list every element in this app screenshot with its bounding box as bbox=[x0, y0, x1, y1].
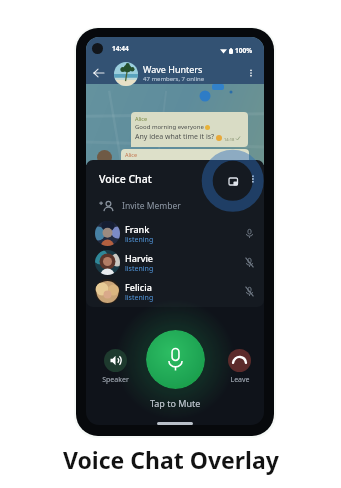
staticText: Invite Member bbox=[122, 200, 181, 212]
button[interactable]: Tap to Mute bbox=[146, 330, 205, 389]
staticText: Harvie bbox=[125, 252, 154, 264]
staticText: Alice bbox=[135, 115, 148, 122]
staticText: Felicia bbox=[125, 281, 152, 293]
button[interactable]: Unmute Harvie bbox=[244, 257, 255, 268]
button[interactable]: Leave bbox=[228, 349, 251, 385]
button[interactable]: Speaker bbox=[102, 349, 129, 385]
staticText: Leave bbox=[230, 375, 250, 385]
staticText: listening bbox=[125, 235, 154, 245]
staticText: Tap to Mute bbox=[150, 397, 201, 409]
staticText: Frank bbox=[125, 223, 150, 235]
button[interactable]: Mute Frank bbox=[244, 228, 255, 239]
button[interactable]: Back bbox=[93, 67, 105, 79]
button[interactable]: Picture in picture bbox=[223, 172, 242, 191]
staticText: Good morning everyone bbox=[135, 123, 204, 131]
staticText: 100% bbox=[235, 46, 253, 55]
staticText: Voice Chat bbox=[99, 172, 152, 186]
staticText: 14:44 bbox=[112, 44, 129, 53]
button[interactable]: More options bbox=[246, 172, 260, 186]
staticText: 14:18 bbox=[224, 137, 235, 142]
staticText: 47 members, 7 online bbox=[143, 75, 205, 83]
button[interactable]: Frank bbox=[86, 220, 264, 247]
button[interactable]: Harvie bbox=[86, 249, 264, 276]
staticText: listening bbox=[125, 264, 154, 274]
staticText: Wave Hunters bbox=[143, 63, 203, 75]
button[interactable]: Felicia bbox=[86, 278, 264, 305]
button[interactable]: Invite Member bbox=[86, 193, 264, 219]
button[interactable]: Unmute Felicia bbox=[244, 286, 255, 297]
button[interactable]: More options bbox=[245, 67, 257, 79]
staticText: Voice Chat Overlay bbox=[63, 444, 279, 475]
staticText: listening bbox=[125, 293, 154, 303]
staticText: Any idea what time it is? bbox=[135, 132, 215, 142]
staticText: Alice bbox=[125, 151, 138, 158]
staticText: Speaker bbox=[102, 375, 129, 385]
